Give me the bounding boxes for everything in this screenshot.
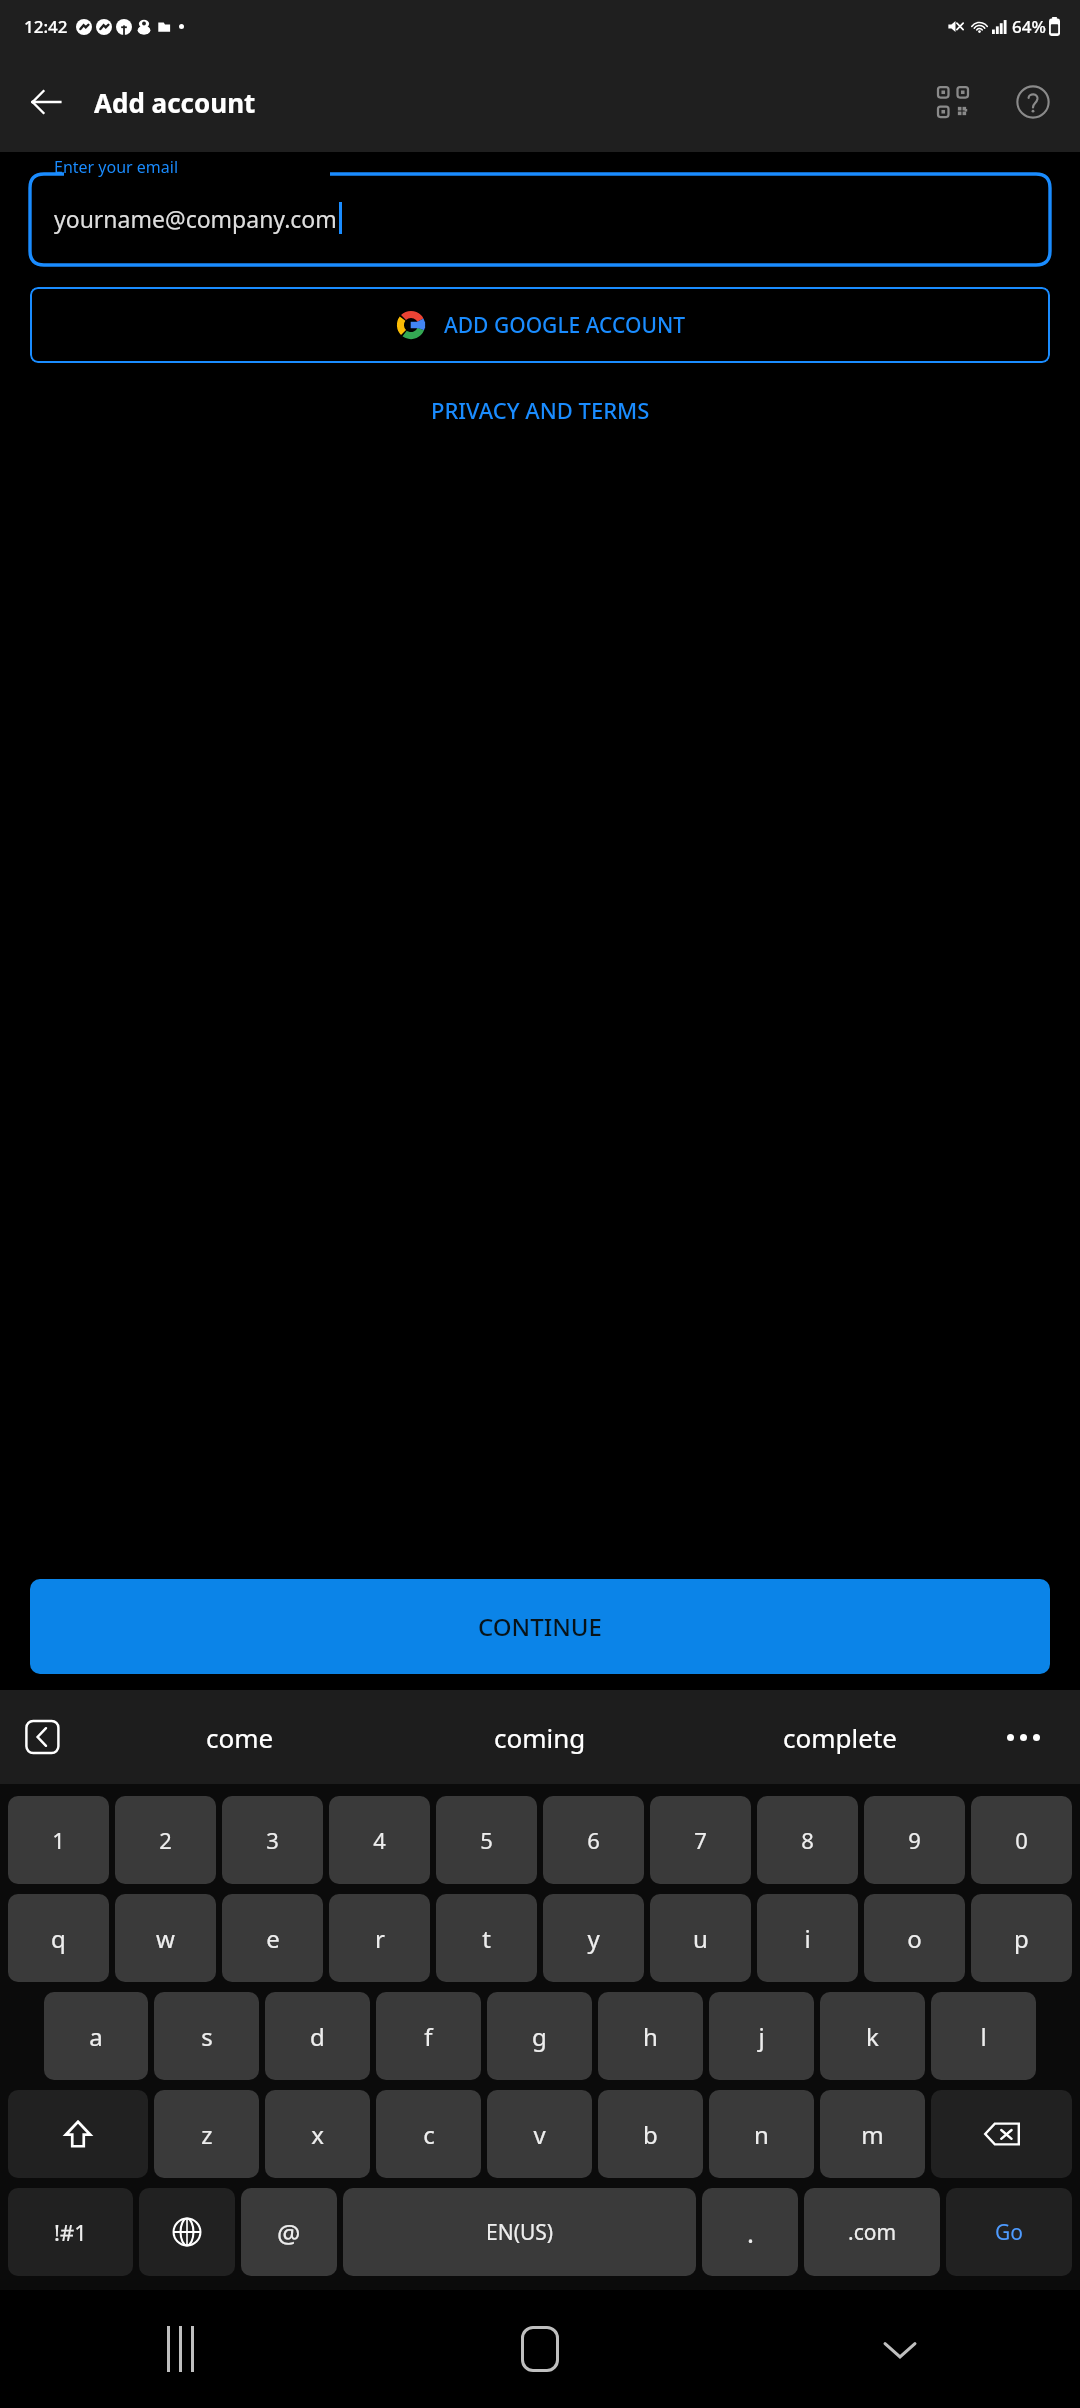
staticText: v xyxy=(533,2118,546,2151)
button[interactable]: y xyxy=(543,1894,644,1982)
staticText: n xyxy=(754,2118,769,2151)
staticText: Add account xyxy=(94,85,256,120)
staticText: x xyxy=(311,2118,324,2151)
button[interactable]: Change language xyxy=(139,2188,235,2276)
button[interactable]: d xyxy=(265,1992,370,2080)
button[interactable]: w xyxy=(115,1894,216,1982)
button[interactable]: @ xyxy=(241,2188,337,2276)
button[interactable]: z xyxy=(154,2090,259,2178)
button[interactable]: More options xyxy=(990,1690,1056,1784)
button[interactable]: Go xyxy=(946,2188,1072,2276)
staticText: 1 xyxy=(52,1825,65,1855)
button[interactable]: o xyxy=(864,1894,965,1982)
button[interactable]: 2 xyxy=(115,1796,216,1884)
staticText: w xyxy=(156,1922,175,1955)
button[interactable]: .com xyxy=(804,2188,940,2276)
button[interactable]: 0 xyxy=(971,1796,1072,1884)
button[interactable]: u xyxy=(650,1894,751,1982)
button[interactable]: 9 xyxy=(864,1796,965,1884)
button[interactable]: h xyxy=(598,1992,703,2080)
button[interactable]: q xyxy=(8,1894,109,1982)
staticText: r xyxy=(375,1922,385,1955)
staticText: j xyxy=(758,2020,765,2053)
button[interactable]: 6 xyxy=(543,1796,644,1884)
button[interactable]: p xyxy=(971,1894,1072,1982)
staticText: o xyxy=(907,1922,922,1955)
staticText: 5 xyxy=(480,1825,493,1855)
staticText: Enter your email xyxy=(54,156,179,178)
button[interactable]: coming xyxy=(390,1690,690,1784)
staticText: coming xyxy=(494,1720,586,1755)
button[interactable]: CONTINUE xyxy=(30,1579,1050,1674)
button[interactable]: x xyxy=(265,2090,370,2178)
staticText: d xyxy=(310,2020,325,2053)
staticText: l xyxy=(980,2020,987,2053)
button[interactable]: !#1 xyxy=(8,2188,133,2276)
staticText: complete xyxy=(783,1720,897,1755)
staticText: 6 xyxy=(587,1825,600,1855)
staticText: e xyxy=(266,1922,280,1955)
staticText: y xyxy=(587,1922,600,1955)
staticText: h xyxy=(643,2020,658,2053)
button[interactable]: i xyxy=(757,1894,858,1982)
staticText: yourname@company.com xyxy=(54,203,337,234)
staticText: !#1 xyxy=(54,2217,87,2247)
button[interactable]: g xyxy=(487,1992,592,2080)
staticText: f xyxy=(424,2020,433,2053)
staticText: 2 xyxy=(159,1825,172,1855)
staticText: a xyxy=(89,2020,103,2053)
button[interactable]: c xyxy=(376,2090,481,2178)
button[interactable]: j xyxy=(709,1992,814,2080)
staticText: q xyxy=(51,1922,66,1955)
button[interactable]: n xyxy=(709,2090,814,2178)
staticText: 12:42 xyxy=(24,15,68,38)
staticText: t xyxy=(482,1922,491,1955)
button[interactable]: k xyxy=(820,1992,925,2080)
button[interactable]: Backspace xyxy=(931,2090,1072,2178)
staticText: 4 xyxy=(373,1825,386,1855)
button[interactable]: 7 xyxy=(650,1796,751,1884)
button[interactable]: 4 xyxy=(329,1796,430,1884)
button[interactable]: complete xyxy=(690,1690,990,1784)
button[interactable]: 8 xyxy=(757,1796,858,1884)
staticText: come xyxy=(206,1720,274,1755)
button[interactable]: Enter your email xyxy=(30,160,1050,265)
button[interactable]: Shift xyxy=(8,2090,148,2178)
button[interactable]: Previous suggestions xyxy=(22,1715,66,1759)
staticText: 7 xyxy=(694,1825,707,1855)
staticText: CONTINUE xyxy=(478,1610,602,1643)
button[interactable]: 3 xyxy=(222,1796,323,1884)
button[interactable]: . xyxy=(702,2188,798,2276)
button[interactable]: e xyxy=(222,1894,323,1982)
button[interactable]: b xyxy=(598,2090,703,2178)
staticText: b xyxy=(643,2118,658,2151)
staticText: s xyxy=(201,2020,213,2053)
button[interactable]: s xyxy=(154,1992,259,2080)
button[interactable]: l xyxy=(931,1992,1036,2080)
staticText: .com xyxy=(848,2218,897,2247)
button[interactable]: Hide keyboard xyxy=(720,2290,1080,2408)
staticText: u xyxy=(693,1922,708,1955)
button[interactable]: EN(US) xyxy=(343,2188,696,2276)
button[interactable]: 1 xyxy=(8,1796,109,1884)
button[interactable]: r xyxy=(329,1894,430,1982)
button[interactable]: f xyxy=(376,1992,481,2080)
button[interactable]: v xyxy=(487,2090,592,2178)
button[interactable]: Scan QR code xyxy=(922,71,984,133)
button[interactable]: PRIVACY AND TERMS xyxy=(415,385,666,435)
button[interactable]: a xyxy=(44,1992,148,2080)
button[interactable]: Home xyxy=(360,2290,720,2408)
button[interactable]: Help xyxy=(1002,71,1064,133)
staticText: @ xyxy=(277,2215,301,2250)
staticText: 8 xyxy=(801,1825,814,1855)
staticText: ADD GOOGLE ACCOUNT xyxy=(444,311,685,340)
button[interactable]: come xyxy=(90,1690,390,1784)
button[interactable]: Back xyxy=(14,70,78,134)
button[interactable]: m xyxy=(820,2090,925,2178)
button[interactable]: t xyxy=(436,1894,537,1982)
button[interactable]: Recent apps xyxy=(0,2290,360,2408)
staticText: z xyxy=(201,2118,213,2151)
button[interactable]: 5 xyxy=(436,1796,537,1884)
staticText: g xyxy=(532,2020,547,2053)
button[interactable]: ADD GOOGLE ACCOUNT xyxy=(30,287,1050,363)
